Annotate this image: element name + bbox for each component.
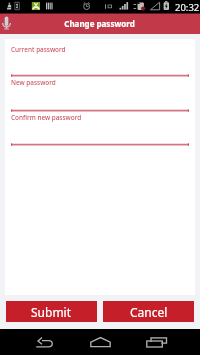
button[interactable]: Submit xyxy=(6,301,97,322)
staticText: 20:32 xyxy=(175,1,200,14)
button[interactable]: Home xyxy=(86,329,114,355)
button[interactable]: Voice search xyxy=(0,14,14,34)
staticText: Submit xyxy=(31,304,72,320)
staticText: Current password xyxy=(11,45,66,54)
staticText: New password xyxy=(11,78,56,87)
button[interactable]: New password xyxy=(5,78,195,112)
button[interactable]: Confirm new password xyxy=(5,113,195,146)
button[interactable]: Current password xyxy=(5,45,195,77)
staticText: Confirm new password xyxy=(11,113,82,122)
button[interactable]: Recent apps xyxy=(142,329,170,355)
staticText: Cancel xyxy=(130,304,168,320)
button[interactable]: Cancel xyxy=(103,301,194,322)
staticText: Change password xyxy=(64,18,135,29)
button[interactable]: Back xyxy=(30,329,58,355)
